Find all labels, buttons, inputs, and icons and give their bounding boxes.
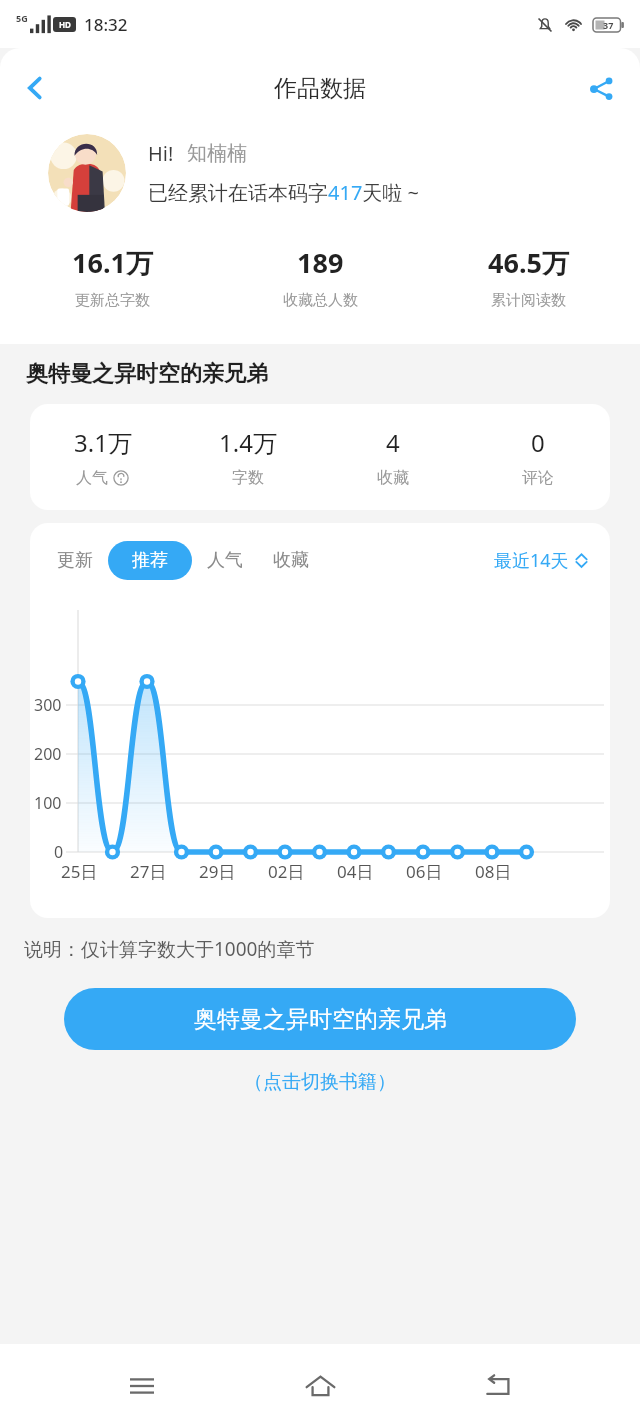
staticText: 更新 [57, 549, 93, 572]
button[interactable]: 推荐 [108, 541, 192, 580]
button[interactable]: 46.5万 [424, 244, 632, 310]
staticText: 推荐 [132, 549, 168, 572]
staticText: 已经累计在话本码字417天啦 ~ [148, 179, 419, 206]
staticText: 奥特曼之异时空的亲兄弟 [194, 1005, 447, 1034]
button[interactable]: 189 [216, 244, 424, 310]
staticText: 5G [16, 12, 28, 24]
staticText: 04日 [337, 860, 374, 883]
button[interactable]: 更新 [42, 541, 108, 580]
staticText: 收藏 [377, 468, 409, 488]
staticText: 收藏 [273, 549, 309, 572]
button[interactable]: Back [462, 1350, 534, 1422]
staticText: 人气 [207, 549, 243, 572]
staticText: 收藏总人数 [283, 291, 358, 310]
button[interactable]: Home [284, 1350, 356, 1422]
staticText: 300 [34, 694, 62, 716]
staticText: 更新总字数 [75, 291, 150, 310]
staticText: 说明：仅计算字数大于1000的章节 [24, 936, 315, 962]
staticText: （点击切换书籍） [244, 1070, 396, 1094]
staticText: Hi! [148, 140, 174, 167]
staticText: 06日 [406, 860, 443, 883]
staticText: 4 [386, 426, 400, 459]
staticText: 08日 [475, 860, 512, 883]
button[interactable]: （点击切换书籍） [234, 1064, 406, 1100]
staticText: 16.1万 [72, 244, 153, 281]
button[interactable]: 人气 [192, 541, 258, 580]
staticText: 18:32 [84, 13, 128, 36]
staticText: 评论 [522, 468, 554, 488]
staticText: 知楠楠 [187, 141, 247, 166]
staticText: 29日 [199, 860, 236, 883]
staticText: 100 [34, 792, 62, 814]
button[interactable]: Back [6, 59, 64, 117]
staticText: 46.5万 [488, 244, 569, 281]
staticText: 37 [603, 19, 614, 31]
staticText: 02日 [268, 860, 305, 883]
staticText: 作品数据 [274, 74, 366, 103]
button[interactable]: 收藏 [258, 541, 324, 580]
staticText: 奥特曼之异时空的亲兄弟 [26, 360, 268, 388]
staticText: 累计阅读数 [491, 291, 566, 310]
staticText: 189 [297, 244, 344, 281]
staticText: 200 [34, 743, 62, 765]
button[interactable]: 奥特曼之异时空的亲兄弟 [64, 988, 576, 1050]
staticText: 0 [531, 426, 545, 459]
button[interactable]: 4 [320, 426, 465, 488]
staticText: 1.4万 [219, 426, 277, 459]
button[interactable]: 1.4万 [175, 426, 320, 488]
button[interactable]: 0 [465, 426, 610, 488]
staticText: 3.1万 [74, 426, 132, 459]
button[interactable]: 3.1万 [30, 426, 175, 488]
staticText: HD [59, 19, 71, 30]
button[interactable]: Recent apps [106, 1350, 178, 1422]
staticText: 最近14天 [494, 548, 569, 573]
staticText: 人气 [76, 468, 108, 488]
button[interactable]: 最近14天 [490, 544, 592, 577]
button[interactable]: 16.1万 [8, 244, 216, 310]
staticText: 27日 [130, 860, 167, 883]
button[interactable]: Share [572, 59, 630, 117]
staticText: 25日 [61, 860, 98, 883]
staticText: 0 [54, 841, 64, 863]
staticText: 字数 [232, 468, 264, 488]
